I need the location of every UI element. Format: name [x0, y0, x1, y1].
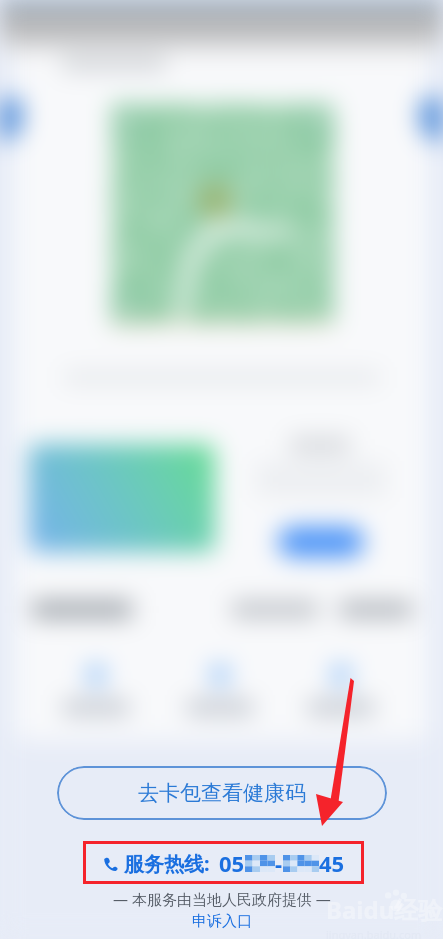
staticText: Baidu经验: [326, 893, 443, 926]
staticText: -: [275, 848, 283, 878]
button[interactable]: 申诉入口: [192, 912, 252, 931]
other: Annotation arrow: [0, 0, 443, 939]
button[interactable]: 服务热线:: [83, 841, 364, 884]
button[interactable]: 去卡包查看健康码: [57, 766, 387, 820]
staticText: 申诉入口: [192, 912, 252, 931]
staticText: 05: [219, 848, 245, 878]
staticText: 去卡包查看健康码: [138, 780, 306, 806]
other: Baidu Jingyan watermark: [382, 887, 410, 915]
staticText: — 本服务由当地人民政府提供 —: [113, 889, 331, 909]
staticText: 45: [319, 848, 345, 878]
staticText: 服务热线:: [124, 850, 210, 877]
